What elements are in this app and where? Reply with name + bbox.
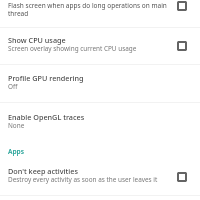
staticText: Apps xyxy=(8,147,24,156)
staticText: Screen overlay showing current CPU usage xyxy=(8,44,137,53)
staticText: Flash screen when apps do long operation… xyxy=(8,1,173,18)
button[interactable]: Show CPU usage xyxy=(177,41,187,51)
staticText: Destroy every activity as soon as the us… xyxy=(8,175,158,184)
button[interactable]: Profile GPU rendering xyxy=(0,66,200,101)
button[interactable]: Don't keep activities xyxy=(0,161,200,195)
staticText: Show CPU usage xyxy=(8,35,66,45)
button[interactable]: Don't keep activities xyxy=(177,172,187,182)
button[interactable]: Enable OpenGL traces xyxy=(0,103,200,141)
button[interactable]: Flash screen on long operations xyxy=(177,1,187,11)
staticText: Profile GPU rendering xyxy=(8,73,84,83)
staticText: Don't keep activities xyxy=(8,166,78,176)
staticText: Off xyxy=(8,82,18,91)
staticText: Enable OpenGL traces xyxy=(8,112,85,122)
staticText: None xyxy=(8,121,25,130)
button[interactable]: Flash screen when apps do long operation… xyxy=(0,0,200,26)
button[interactable]: Show CPU usage xyxy=(0,28,200,64)
